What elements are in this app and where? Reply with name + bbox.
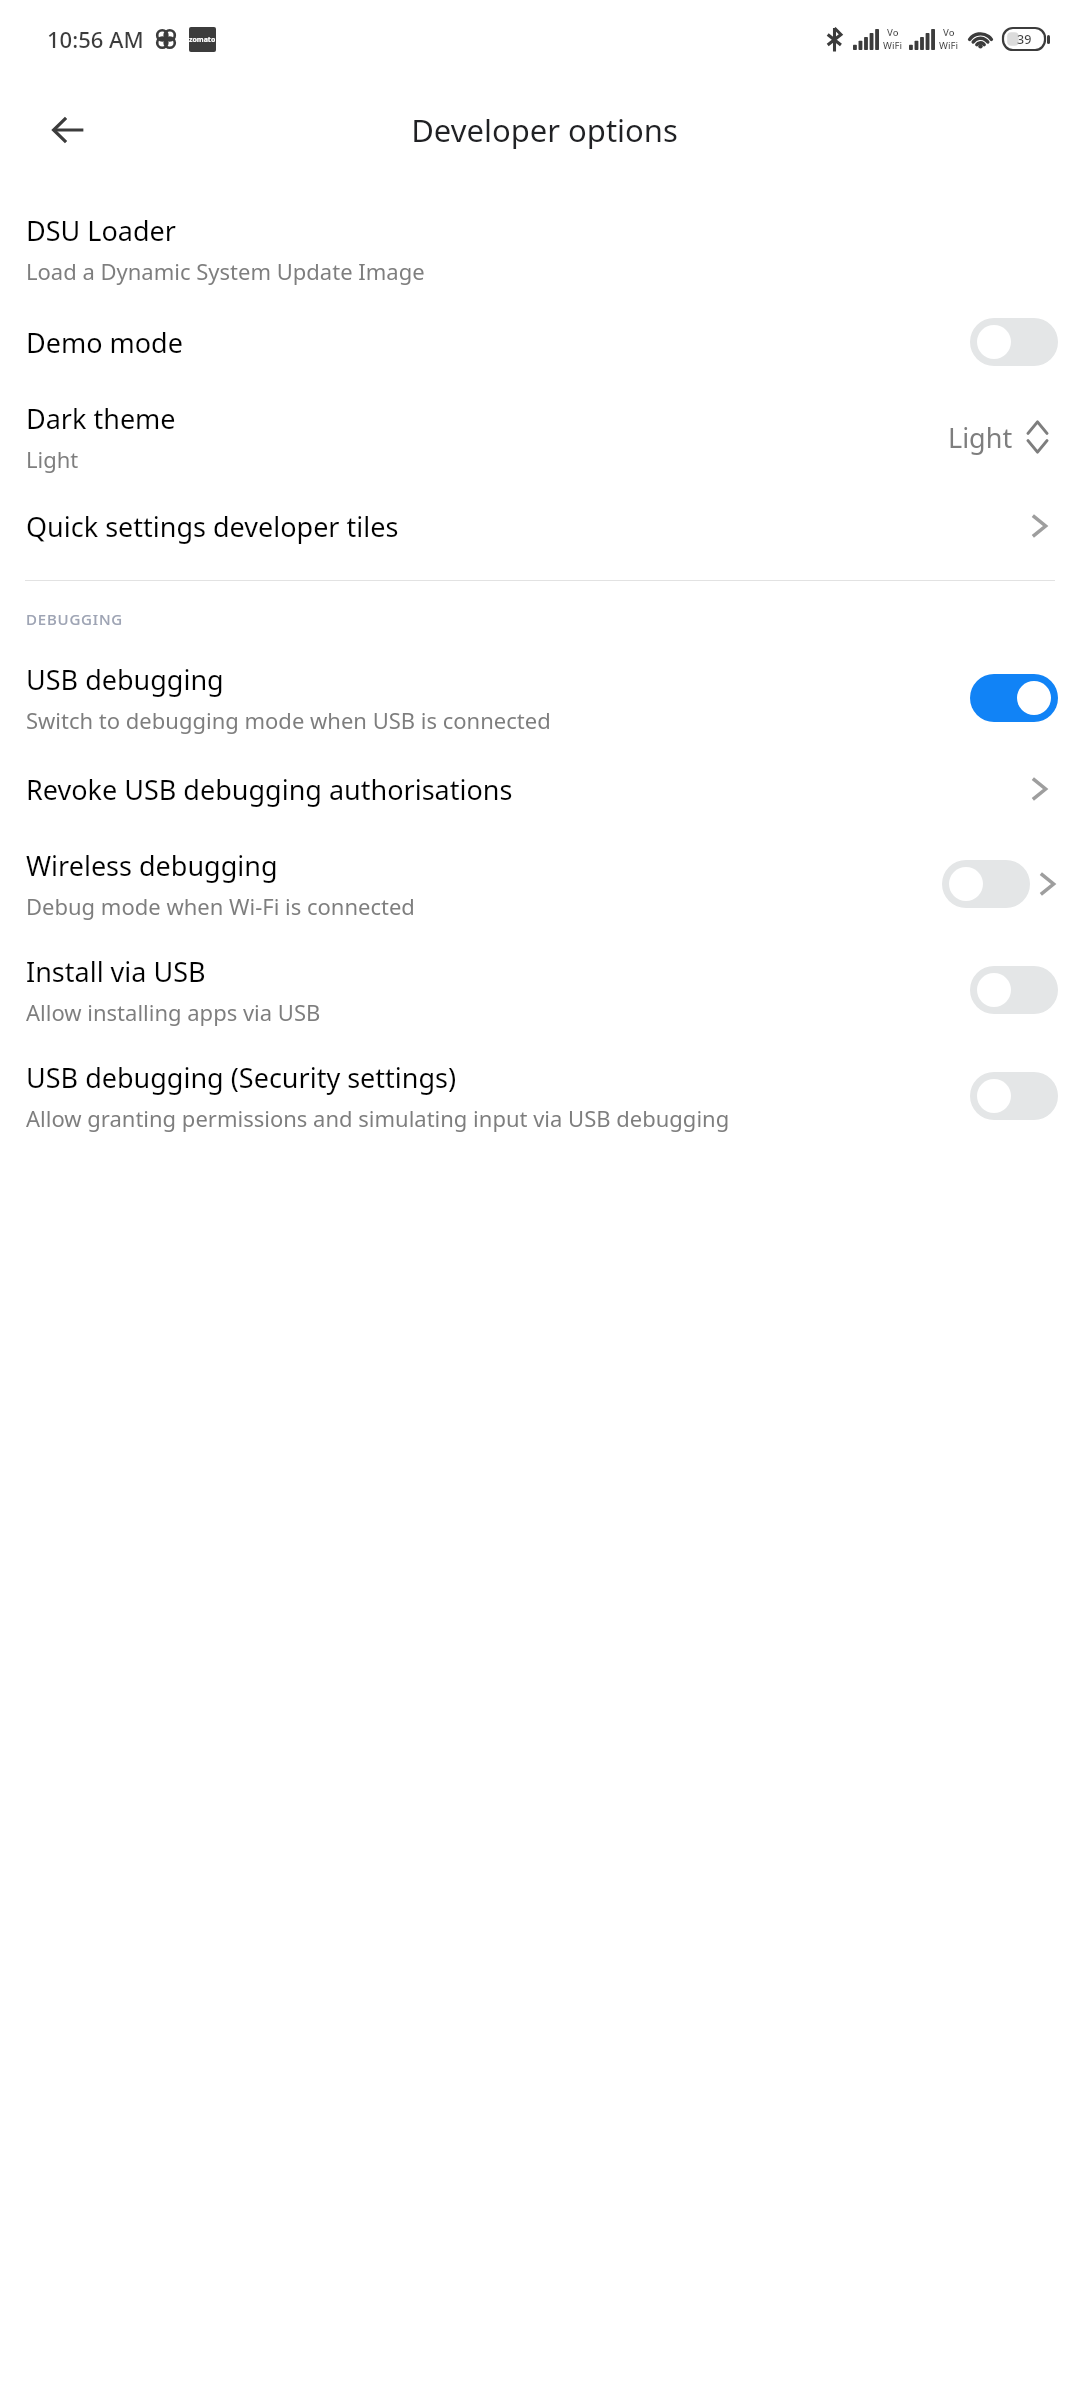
button[interactable]: Install via USB xyxy=(0,935,1080,1041)
staticText: Developer options xyxy=(411,109,678,151)
staticText: Debug mode when Wi-Fi is connected xyxy=(26,891,415,921)
staticText: WiFi xyxy=(883,39,903,52)
staticText: Vo xyxy=(887,26,899,39)
button[interactable]: On xyxy=(970,674,1058,722)
staticText: WiFi xyxy=(939,39,959,52)
staticText: Light xyxy=(26,444,79,474)
button[interactable]: Off xyxy=(970,966,1058,1014)
button[interactable]: Quick settings developer tiles xyxy=(0,488,1080,566)
staticText: Wireless debugging xyxy=(26,847,278,884)
button[interactable]: Back xyxy=(38,100,98,160)
button[interactable]: Demo mode xyxy=(0,302,1080,382)
staticText: Allow installing apps via USB xyxy=(26,997,321,1027)
staticText: 39 xyxy=(1017,31,1032,48)
button[interactable]: USB debugging xyxy=(0,657,1080,747)
staticText: Install via USB xyxy=(26,953,206,990)
staticText: Revoke USB debugging authorisations xyxy=(26,771,1028,808)
staticText: Switch to debugging mode when USB is con… xyxy=(26,705,551,735)
button[interactable]: Dark theme xyxy=(0,382,1080,488)
staticText: Light xyxy=(948,419,1013,456)
button[interactable]: USB debugging (Security settings) xyxy=(0,1041,1080,1141)
staticText: DSU Loader xyxy=(26,212,176,249)
button[interactable]: Off xyxy=(942,860,1030,908)
staticText: USB debugging xyxy=(26,661,224,698)
other: Change dark theme setting xyxy=(1025,419,1050,455)
staticText: Demo mode xyxy=(26,324,183,361)
staticText: 10:56 AM xyxy=(47,24,144,54)
button[interactable]: Off xyxy=(970,1072,1058,1120)
button[interactable]: DSU Loader xyxy=(0,212,1080,302)
staticText: Quick settings developer tiles xyxy=(26,508,1028,545)
button[interactable]: Wireless debugging xyxy=(0,831,1080,935)
staticText: zomato xyxy=(189,35,216,45)
staticText: Load a Dynamic System Update Image xyxy=(26,256,425,286)
staticText: Allow granting permissions and simulatin… xyxy=(26,1103,730,1133)
staticText: DEBUGGING xyxy=(26,609,124,629)
button[interactable]: Off xyxy=(970,318,1058,366)
staticText: USB debugging (Security settings) xyxy=(26,1059,457,1096)
staticText: Vo xyxy=(943,26,955,39)
staticText: Dark theme xyxy=(26,400,176,437)
button[interactable]: Revoke USB debugging authorisations xyxy=(0,747,1080,831)
